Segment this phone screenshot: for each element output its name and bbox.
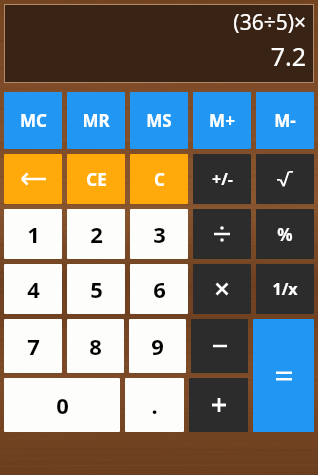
button[interactable]: Minus [191,319,248,373]
button[interactable]: Square root [256,154,314,204]
staticText: 4 [27,274,40,304]
button[interactable]: Plus [189,378,248,432]
button[interactable]: 0 [4,378,120,432]
button[interactable]: 2 [67,209,125,259]
button[interactable]: MS [130,92,188,149]
staticText: MC [20,109,47,132]
button[interactable]: +/- [193,154,251,204]
button[interactable]: 7 [4,319,62,373]
staticText: 7.2 [270,39,306,73]
staticText: (36÷5)× [233,8,306,37]
button[interactable]: Equals [253,319,314,432]
button[interactable]: Multiply [193,264,251,314]
staticText: 2 [90,219,103,249]
staticText: 8 [89,331,102,361]
staticText: 5 [90,274,103,304]
staticText: % [277,223,293,246]
button[interactable]: 9 [129,319,186,373]
staticText: M- [274,109,296,132]
button[interactable]: C [130,154,188,204]
button[interactable]: % [256,209,314,259]
button[interactable]: 1/x [256,264,314,314]
staticText: 3 [153,219,166,249]
staticText: +/- [212,168,233,190]
staticText: MS [146,109,172,132]
button[interactable]: M- [256,92,314,149]
staticText: 6 [153,274,166,304]
button[interactable]: 8 [67,319,124,373]
staticText: 1 [27,219,40,249]
staticText: MR [82,109,110,132]
staticText: 0 [56,390,69,420]
button[interactable]: 6 [130,264,188,314]
button[interactable]: . [125,378,184,432]
staticText: 1/x [272,278,298,300]
staticText: CE [86,168,107,191]
button[interactable]: Divide [193,209,251,259]
button[interactable]: 5 [67,264,125,314]
staticText: C [154,168,165,191]
staticText: . [151,390,158,420]
staticText: M+ [209,109,235,132]
staticText: 9 [151,331,164,361]
button[interactable]: M+ [193,92,251,149]
button[interactable]: MC [4,92,62,149]
button[interactable]: Backspace [4,154,62,204]
button[interactable]: 4 [4,264,62,314]
staticText: 7 [27,331,40,361]
button[interactable]: 3 [130,209,188,259]
button[interactable]: CE [67,154,125,204]
button[interactable]: 1 [4,209,62,259]
button[interactable]: MR [67,92,125,149]
